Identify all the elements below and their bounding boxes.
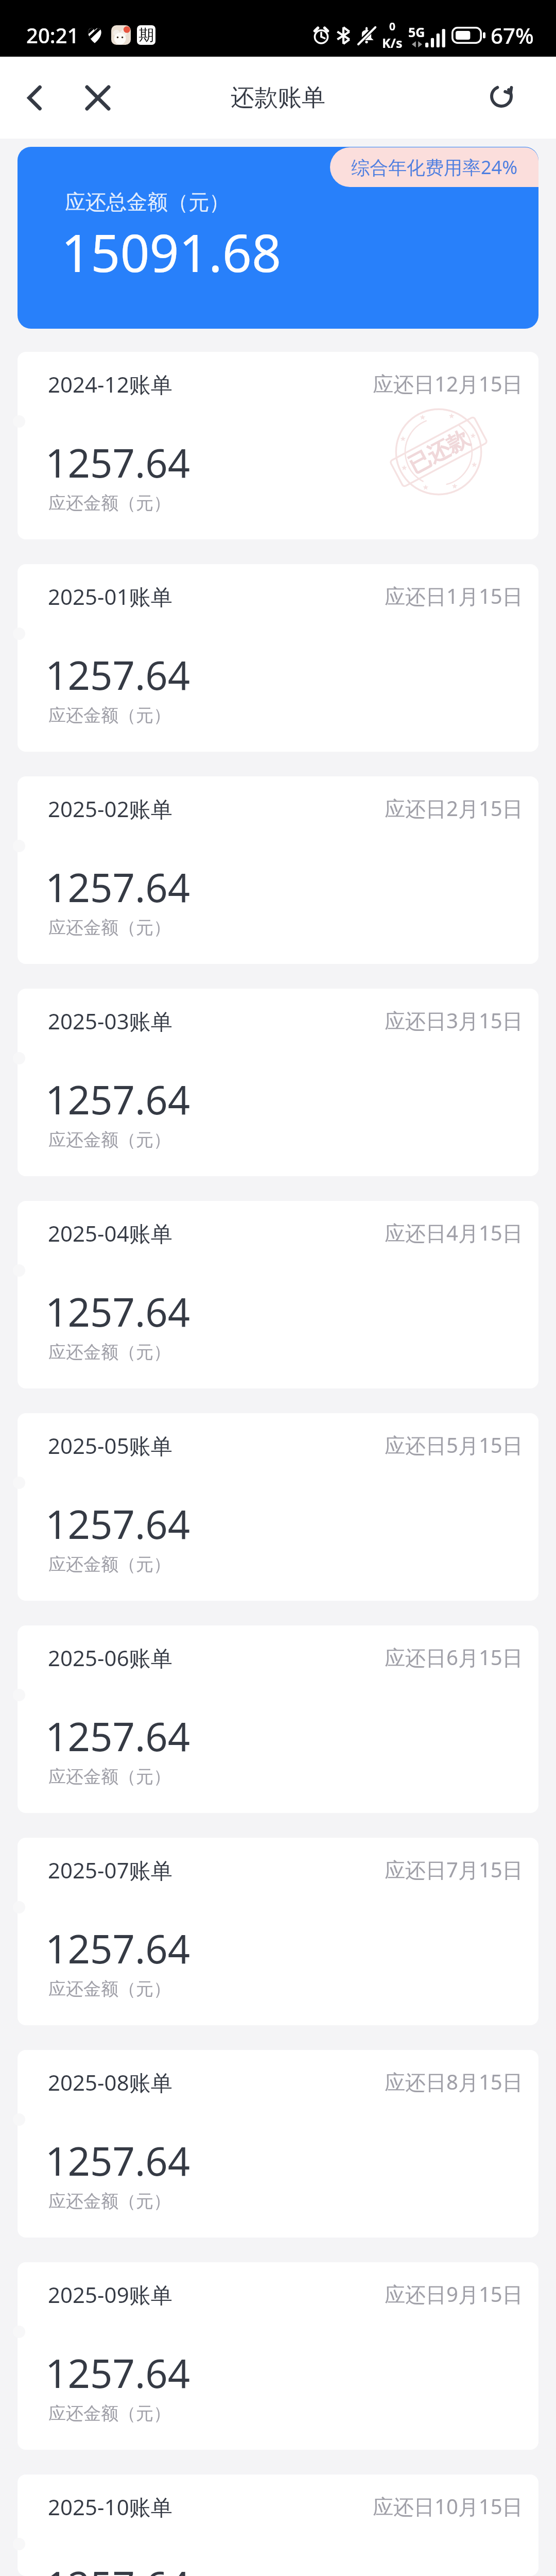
staticText: 应还金额（元） (48, 1553, 171, 1575)
staticText: 综合年化费用率24% (351, 155, 518, 180)
staticText: 应还日2月15日 (385, 794, 523, 822)
staticText: 2025-10账单 (48, 2492, 172, 2521)
staticText: 1257.64 (45, 2346, 190, 2400)
staticText: 已还款 (404, 425, 474, 479)
staticText: 应还金额（元） (48, 2402, 171, 2425)
staticText: 应还总金额（元） (65, 189, 230, 215)
staticText: 1257.64 (45, 1285, 190, 1338)
staticText: 2025-02账单 (48, 794, 172, 823)
staticText: 应还金额（元） (48, 1129, 171, 1151)
staticText: 应还日8月15日 (385, 2067, 523, 2096)
staticText: 应还金额（元） (48, 917, 171, 939)
staticText: 应还金额（元） (48, 1341, 171, 1363)
staticText: 1257.64 (45, 1709, 190, 1763)
staticText: 应还日9月15日 (385, 2280, 523, 2308)
staticText: 2025-03账单 (48, 1006, 172, 1036)
button[interactable]: 返回 (0, 57, 69, 139)
button[interactable]: 2025-09账单 (18, 2262, 538, 2450)
staticText: 2025-04账单 (48, 1218, 172, 1248)
staticText: 1257.64 (45, 436, 190, 489)
staticText: 5G (408, 23, 425, 41)
staticText: 67% (491, 21, 534, 50)
staticText: 1257.64 (45, 1073, 190, 1126)
staticText: 20:21 (26, 21, 79, 49)
staticText: 0 (389, 19, 396, 34)
staticText: K/s (382, 34, 403, 52)
staticText: 期 (138, 25, 154, 45)
staticText: 应还金额（元） (48, 492, 171, 514)
staticText: 1257.64 (45, 860, 190, 914)
staticText: 应还日5月15日 (385, 1431, 523, 1459)
staticText: 还款账单 (231, 83, 325, 113)
staticText: 应还金额（元） (48, 2190, 171, 2212)
button[interactable]: 2025-02账单 (18, 776, 538, 964)
button[interactable]: 2025-06账单 (18, 1625, 538, 1813)
button[interactable]: 2025-01账单 (18, 564, 538, 752)
staticText: 1257.64 (45, 1497, 190, 1551)
button[interactable]: 应还总金额（元） (18, 147, 538, 329)
staticText: 15091.68 (61, 217, 282, 287)
button[interactable]: 2025-03账单 (18, 989, 538, 1176)
staticText: 1257.64 (45, 2558, 190, 2576)
staticText: 应还日1月15日 (385, 582, 523, 610)
button[interactable]: 已还款 (18, 352, 538, 539)
staticText: 应还日7月15日 (385, 1855, 523, 1884)
staticText: 2024-12账单 (48, 369, 172, 399)
staticText: 2025-01账单 (48, 582, 172, 611)
staticText: 应还金额（元） (48, 704, 171, 726)
button[interactable]: 2025-05账单 (18, 1413, 538, 1601)
staticText: 2025-06账单 (48, 1643, 172, 1672)
button[interactable]: 2025-08账单 (18, 2050, 538, 2238)
staticText: 1257.64 (45, 1922, 190, 1975)
staticText: 2025-09账单 (48, 2280, 172, 2309)
button[interactable]: 关闭 (69, 57, 127, 139)
staticText: 应还日12月15日 (373, 369, 523, 398)
staticText: 2025-07账单 (48, 1855, 172, 1885)
button[interactable]: 2025-10账单 (18, 2475, 538, 2576)
staticText: 1257.64 (45, 2134, 190, 2188)
staticText: 2025-08账单 (48, 2067, 172, 2097)
button[interactable]: 2025-07账单 (18, 1838, 538, 2025)
staticText: 1257.64 (45, 648, 190, 702)
staticText: 应还日6月15日 (385, 1643, 523, 1671)
button[interactable]: 刷新 (490, 57, 556, 139)
staticText: 应还日3月15日 (385, 1006, 523, 1035)
staticText: 应还日4月15日 (385, 1218, 523, 1247)
staticText: 应还金额（元） (48, 1766, 171, 1788)
staticText: 应还金额（元） (48, 1978, 171, 2000)
staticText: 2025-05账单 (48, 1431, 172, 1460)
staticText: 应还日10月15日 (373, 2492, 523, 2520)
button[interactable]: 2025-04账单 (18, 1201, 538, 1388)
